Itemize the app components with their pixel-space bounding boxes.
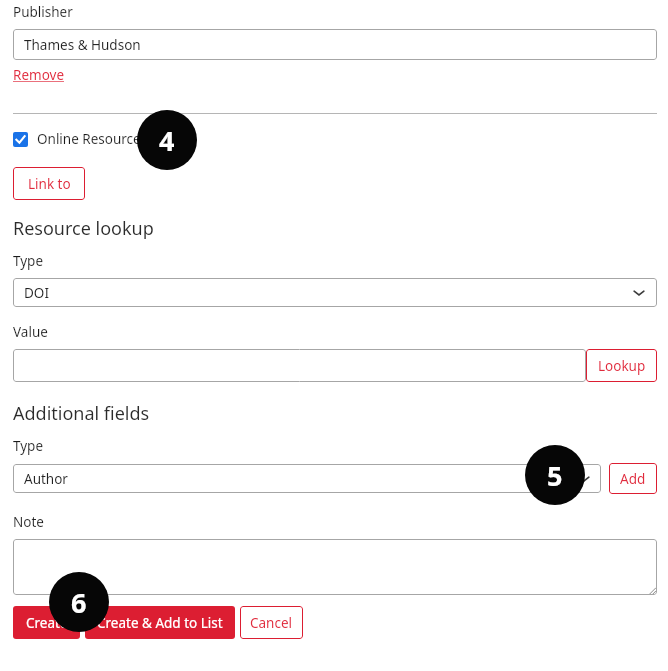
staticText: 6 bbox=[71, 584, 87, 621]
button[interactable] bbox=[13, 539, 657, 595]
staticText: Add bbox=[620, 470, 646, 488]
staticText: Create bbox=[26, 614, 68, 632]
staticText: 4 bbox=[159, 122, 175, 159]
staticText: Resource lookup bbox=[13, 216, 154, 241]
button[interactable]: Lookup bbox=[586, 349, 657, 382]
staticText: Remove bbox=[13, 66, 65, 84]
staticText: Publisher bbox=[13, 3, 73, 21]
staticText: Type bbox=[13, 252, 44, 270]
staticText: DOI bbox=[24, 284, 49, 302]
staticText: Value bbox=[13, 323, 48, 341]
button[interactable]: Remove bbox=[13, 66, 65, 84]
staticText: Lookup bbox=[598, 357, 646, 375]
button[interactable]: Link to bbox=[13, 167, 85, 200]
staticText: Link to bbox=[28, 175, 71, 193]
button[interactable]: Expand type bbox=[632, 288, 646, 298]
staticText: Author bbox=[24, 470, 68, 488]
staticText: Additional fields bbox=[13, 401, 150, 426]
button[interactable]: Cancel bbox=[240, 606, 303, 639]
button[interactable]: Create & Add to List bbox=[85, 606, 235, 639]
staticText: Cancel bbox=[250, 614, 293, 632]
staticText: Type bbox=[13, 437, 44, 455]
button[interactable]: Expand additional field type bbox=[577, 474, 591, 484]
button[interactable] bbox=[13, 132, 28, 147]
staticText: 5 bbox=[547, 457, 563, 494]
staticText: Note bbox=[13, 513, 44, 531]
button[interactable]: Add bbox=[609, 463, 657, 494]
button[interactable]: Create bbox=[13, 606, 80, 639]
staticText: Thames & Hudson bbox=[24, 36, 141, 54]
staticText: Create & Add to List bbox=[97, 614, 223, 632]
staticText: Online Resource bbox=[37, 130, 141, 148]
